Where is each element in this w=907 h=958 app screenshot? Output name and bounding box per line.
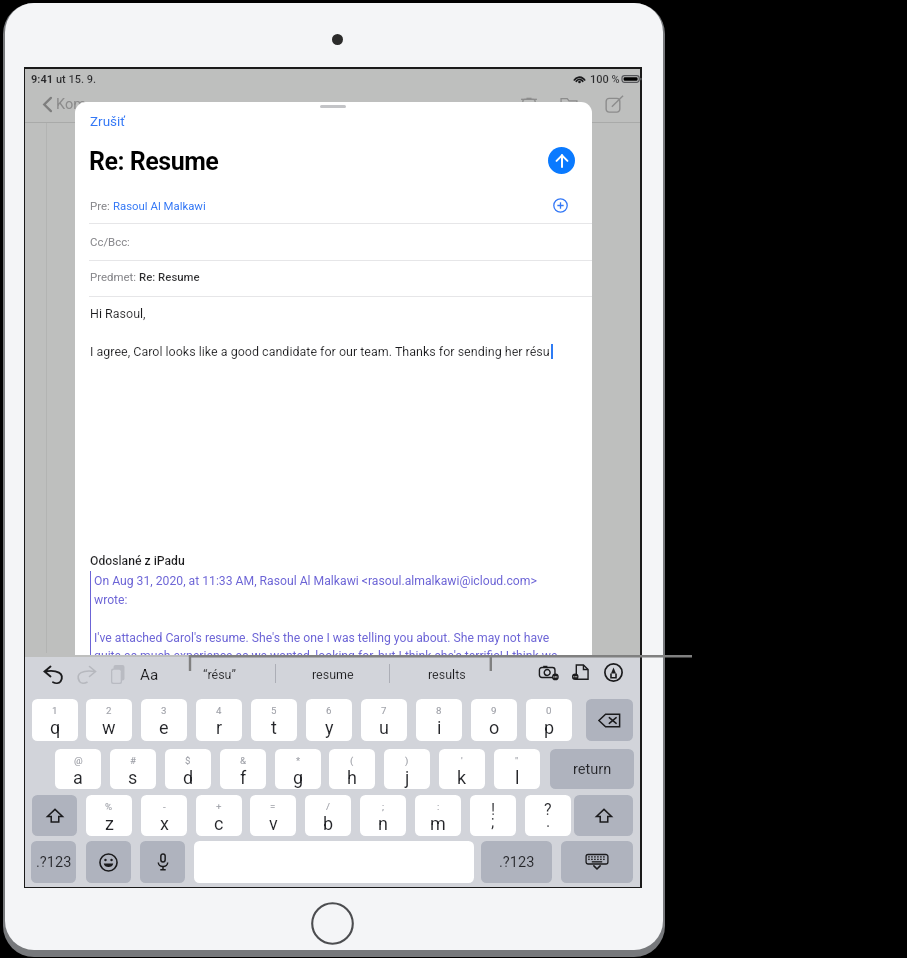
staticText: p bbox=[544, 717, 555, 738]
staticText: results bbox=[428, 667, 466, 682]
button[interactable] bbox=[75, 224, 592, 260]
button[interactable] bbox=[75, 261, 592, 296]
staticText: On Aug 31, 2020, at 11:33 AM, Rasoul Al … bbox=[94, 574, 537, 588]
staticText: u bbox=[379, 717, 389, 738]
staticText: h bbox=[347, 767, 357, 788]
staticText: i bbox=[437, 717, 442, 738]
button[interactable]: 3 bbox=[141, 699, 187, 741]
staticText: 2 bbox=[106, 705, 112, 716]
staticText: & bbox=[240, 755, 247, 766]
button[interactable]: ! bbox=[470, 795, 516, 836]
button[interactable]: Insert document bbox=[570, 662, 591, 683]
staticText: I've attached Carol's resume. She's the … bbox=[94, 631, 550, 645]
button[interactable]: Emoji bbox=[86, 841, 131, 883]
button[interactable]: Markup bbox=[603, 662, 624, 683]
button[interactable]: # bbox=[110, 749, 156, 789]
button[interactable]: Hide keyboard bbox=[561, 841, 633, 883]
button[interactable]: Undo bbox=[41, 662, 66, 687]
button[interactable]: & bbox=[220, 749, 266, 789]
staticText: ( bbox=[350, 755, 354, 766]
staticText: q bbox=[50, 717, 61, 738]
button[interactable]: Shift bbox=[574, 795, 633, 836]
staticText: # bbox=[130, 755, 136, 766]
button[interactable]: Backspace bbox=[586, 699, 633, 741]
button[interactable]: ? bbox=[525, 795, 571, 836]
button[interactable]: $ bbox=[165, 749, 211, 789]
staticText: ? bbox=[544, 800, 552, 819]
button[interactable]: 9 bbox=[471, 699, 517, 741]
button[interactable]: 2 bbox=[86, 699, 132, 741]
staticText: . bbox=[546, 812, 551, 831]
staticText: - bbox=[163, 801, 166, 812]
button[interactable]: 7 bbox=[361, 699, 407, 741]
button[interactable]: " bbox=[494, 749, 540, 789]
button[interactable]: Zrušiť bbox=[86, 111, 134, 131]
staticText: x bbox=[160, 813, 169, 834]
button[interactable]: / bbox=[305, 795, 351, 836]
button[interactable]: resume bbox=[276, 657, 390, 690]
staticText: Pre: bbox=[90, 199, 113, 212]
staticText: = bbox=[270, 801, 276, 812]
staticText: % bbox=[105, 801, 113, 812]
staticText: t bbox=[271, 717, 277, 738]
staticText: return bbox=[573, 760, 612, 777]
button[interactable]: results bbox=[390, 657, 504, 690]
button[interactable]: 4 bbox=[196, 699, 242, 741]
button[interactable]: = bbox=[250, 795, 296, 836]
staticText: 9 bbox=[491, 705, 497, 716]
staticText: 4 bbox=[216, 705, 222, 716]
button[interactable]: .?123 bbox=[481, 841, 552, 883]
staticText: : bbox=[437, 801, 440, 812]
button[interactable]: Aa bbox=[134, 661, 164, 689]
button[interactable]: Paste bbox=[106, 662, 131, 687]
staticText: Predmet: bbox=[90, 270, 139, 283]
staticText: 6 bbox=[326, 705, 332, 716]
other: Shift bbox=[46, 807, 64, 825]
other: Backspace bbox=[598, 712, 621, 729]
staticText: .?123 bbox=[499, 853, 535, 870]
staticText: z bbox=[105, 813, 114, 834]
button[interactable]: 6 bbox=[306, 699, 352, 741]
staticText: / bbox=[326, 801, 330, 812]
button[interactable]: ; bbox=[360, 795, 406, 836]
staticText: resume bbox=[312, 667, 354, 682]
button[interactable]: @ bbox=[55, 749, 101, 789]
button[interactable]: : bbox=[415, 795, 461, 836]
other: Dictate bbox=[154, 853, 172, 871]
staticText: 3 bbox=[161, 705, 167, 716]
staticText: @ bbox=[74, 755, 83, 766]
button[interactable]: 5 bbox=[251, 699, 297, 741]
button[interactable]: Send bbox=[548, 147, 575, 174]
staticText: Cc/Bcc: bbox=[90, 235, 130, 248]
button[interactable]: ' bbox=[439, 749, 485, 789]
other: Shift bbox=[595, 807, 613, 825]
button[interactable]: “résu” bbox=[162, 657, 276, 690]
button[interactable]: % bbox=[86, 795, 132, 836]
button[interactable]: Dictate bbox=[140, 841, 185, 883]
button[interactable]: ( bbox=[329, 749, 375, 789]
button[interactable]: .?123 bbox=[31, 841, 76, 883]
button[interactable]: Add recipient bbox=[553, 198, 568, 213]
staticText: Hi Rasoul, bbox=[90, 306, 146, 321]
button[interactable]: 1 bbox=[32, 699, 78, 741]
button[interactable]: Redo bbox=[74, 662, 99, 687]
button[interactable]: * bbox=[275, 749, 321, 789]
button[interactable] bbox=[75, 187, 592, 223]
button[interactable]: Insert photo bbox=[539, 662, 560, 683]
button[interactable]: ) bbox=[384, 749, 430, 789]
staticText: 8 bbox=[436, 705, 442, 716]
staticText: y bbox=[325, 717, 334, 738]
button[interactable]: 0 bbox=[526, 699, 572, 741]
button[interactable]: 8 bbox=[416, 699, 462, 741]
staticText: ' bbox=[461, 755, 463, 766]
staticText: v bbox=[269, 813, 278, 834]
staticText: ut 15. 9. bbox=[56, 73, 97, 86]
button[interactable]: Shift bbox=[32, 795, 77, 836]
staticText: ) bbox=[405, 755, 409, 766]
button[interactable]: + bbox=[196, 795, 242, 836]
staticText: 0 bbox=[546, 705, 552, 716]
button[interactable]: - bbox=[141, 795, 187, 836]
staticText: 9:41 bbox=[31, 73, 54, 86]
button[interactable]: return bbox=[550, 749, 634, 789]
